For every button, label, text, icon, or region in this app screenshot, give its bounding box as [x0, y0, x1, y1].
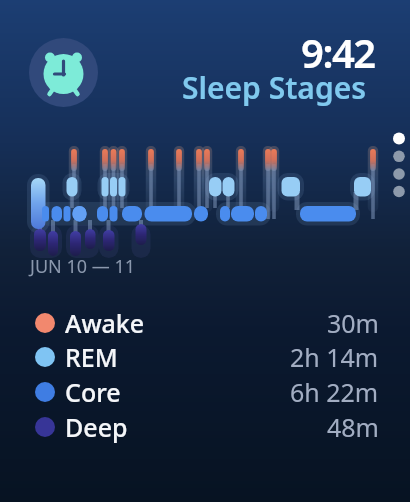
- staticText: Sleep Stages: [182, 67, 367, 108]
- staticText: 2h 14m: [290, 340, 379, 374]
- button[interactable]: Awake: [0, 305, 410, 341]
- button[interactable]: REM: [0, 339, 410, 375]
- staticText: 9:42: [301, 25, 375, 79]
- staticText: 6h 22m: [290, 375, 379, 409]
- staticText: Core: [65, 375, 121, 409]
- button[interactable]: Deep: [0, 409, 410, 445]
- staticText: 48m: [327, 410, 379, 444]
- button[interactable]: Core: [0, 374, 410, 410]
- staticText: REM: [65, 340, 118, 374]
- staticText: Deep: [65, 410, 128, 444]
- button[interactable]: [29, 38, 98, 107]
- staticText: Awake: [65, 306, 145, 340]
- staticText: 30m: [327, 306, 379, 340]
- staticText: JUN 10 — 11: [30, 254, 135, 279]
